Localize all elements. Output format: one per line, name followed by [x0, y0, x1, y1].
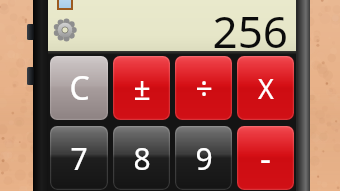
staticText: C [69, 66, 90, 110]
staticText: - [260, 135, 271, 181]
staticText: ± [133, 68, 151, 109]
button[interactable]: 8 [113, 126, 170, 190]
button[interactable]: C [50, 56, 108, 120]
staticText: 9 [195, 138, 213, 179]
staticText: 256 [212, 1, 288, 52]
staticText: 8 [133, 138, 151, 179]
button[interactable]: Settings [54, 19, 76, 41]
staticText: 7 [70, 138, 88, 179]
button[interactable]: 7 [50, 126, 108, 190]
button[interactable]: X [237, 56, 294, 120]
button[interactable]: ÷ [175, 56, 232, 120]
staticText: X [258, 70, 274, 107]
button[interactable]: ± [113, 56, 170, 120]
button[interactable]: 9 [175, 126, 232, 190]
button[interactable]: - [237, 126, 294, 190]
staticText: ÷ [195, 68, 213, 109]
